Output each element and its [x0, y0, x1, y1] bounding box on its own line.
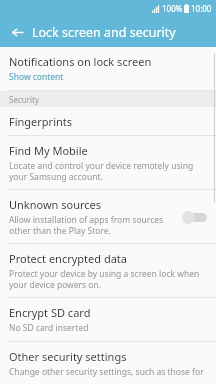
staticText: Locate and control your device remotely …	[9, 160, 204, 182]
staticText: 100%	[162, 3, 183, 14]
staticText: Show content	[9, 71, 64, 83]
button[interactable]: Find My Mobile	[0, 136, 216, 189]
button[interactable]: Unknown sources toggle	[182, 210, 208, 224]
staticText: Unknown sources	[9, 197, 102, 212]
staticText: Protect your device by using a screen lo…	[9, 268, 204, 290]
button[interactable]: Fingerprints	[0, 107, 216, 135]
staticText: Encrypt SD card	[9, 305, 91, 320]
staticText: Other security settings	[9, 349, 127, 364]
staticText: Protect encrypted data	[9, 251, 127, 266]
button[interactable]: Protect encrypted data	[0, 244, 216, 297]
staticText: Security	[9, 94, 40, 105]
staticText: Change other security settings, such as …	[9, 366, 204, 377]
staticText: Notifications on lock screen	[9, 54, 152, 69]
button[interactable]: Unknown sources	[0, 190, 216, 243]
button[interactable]: Notifications on lock screen	[0, 47, 216, 90]
staticText: Find My Mobile	[9, 143, 88, 158]
staticText: No SD card inserted	[9, 322, 89, 334]
button[interactable]: Other security settings	[0, 342, 216, 384]
staticText: 10:00	[191, 3, 212, 14]
staticText: Allow installation of apps from sources …	[9, 214, 176, 236]
staticText: Fingerprints	[9, 114, 73, 129]
staticText: Lock screen and security	[32, 24, 176, 41]
button[interactable]: Encrypt SD card	[0, 298, 216, 341]
button[interactable]: Back	[6, 21, 28, 43]
